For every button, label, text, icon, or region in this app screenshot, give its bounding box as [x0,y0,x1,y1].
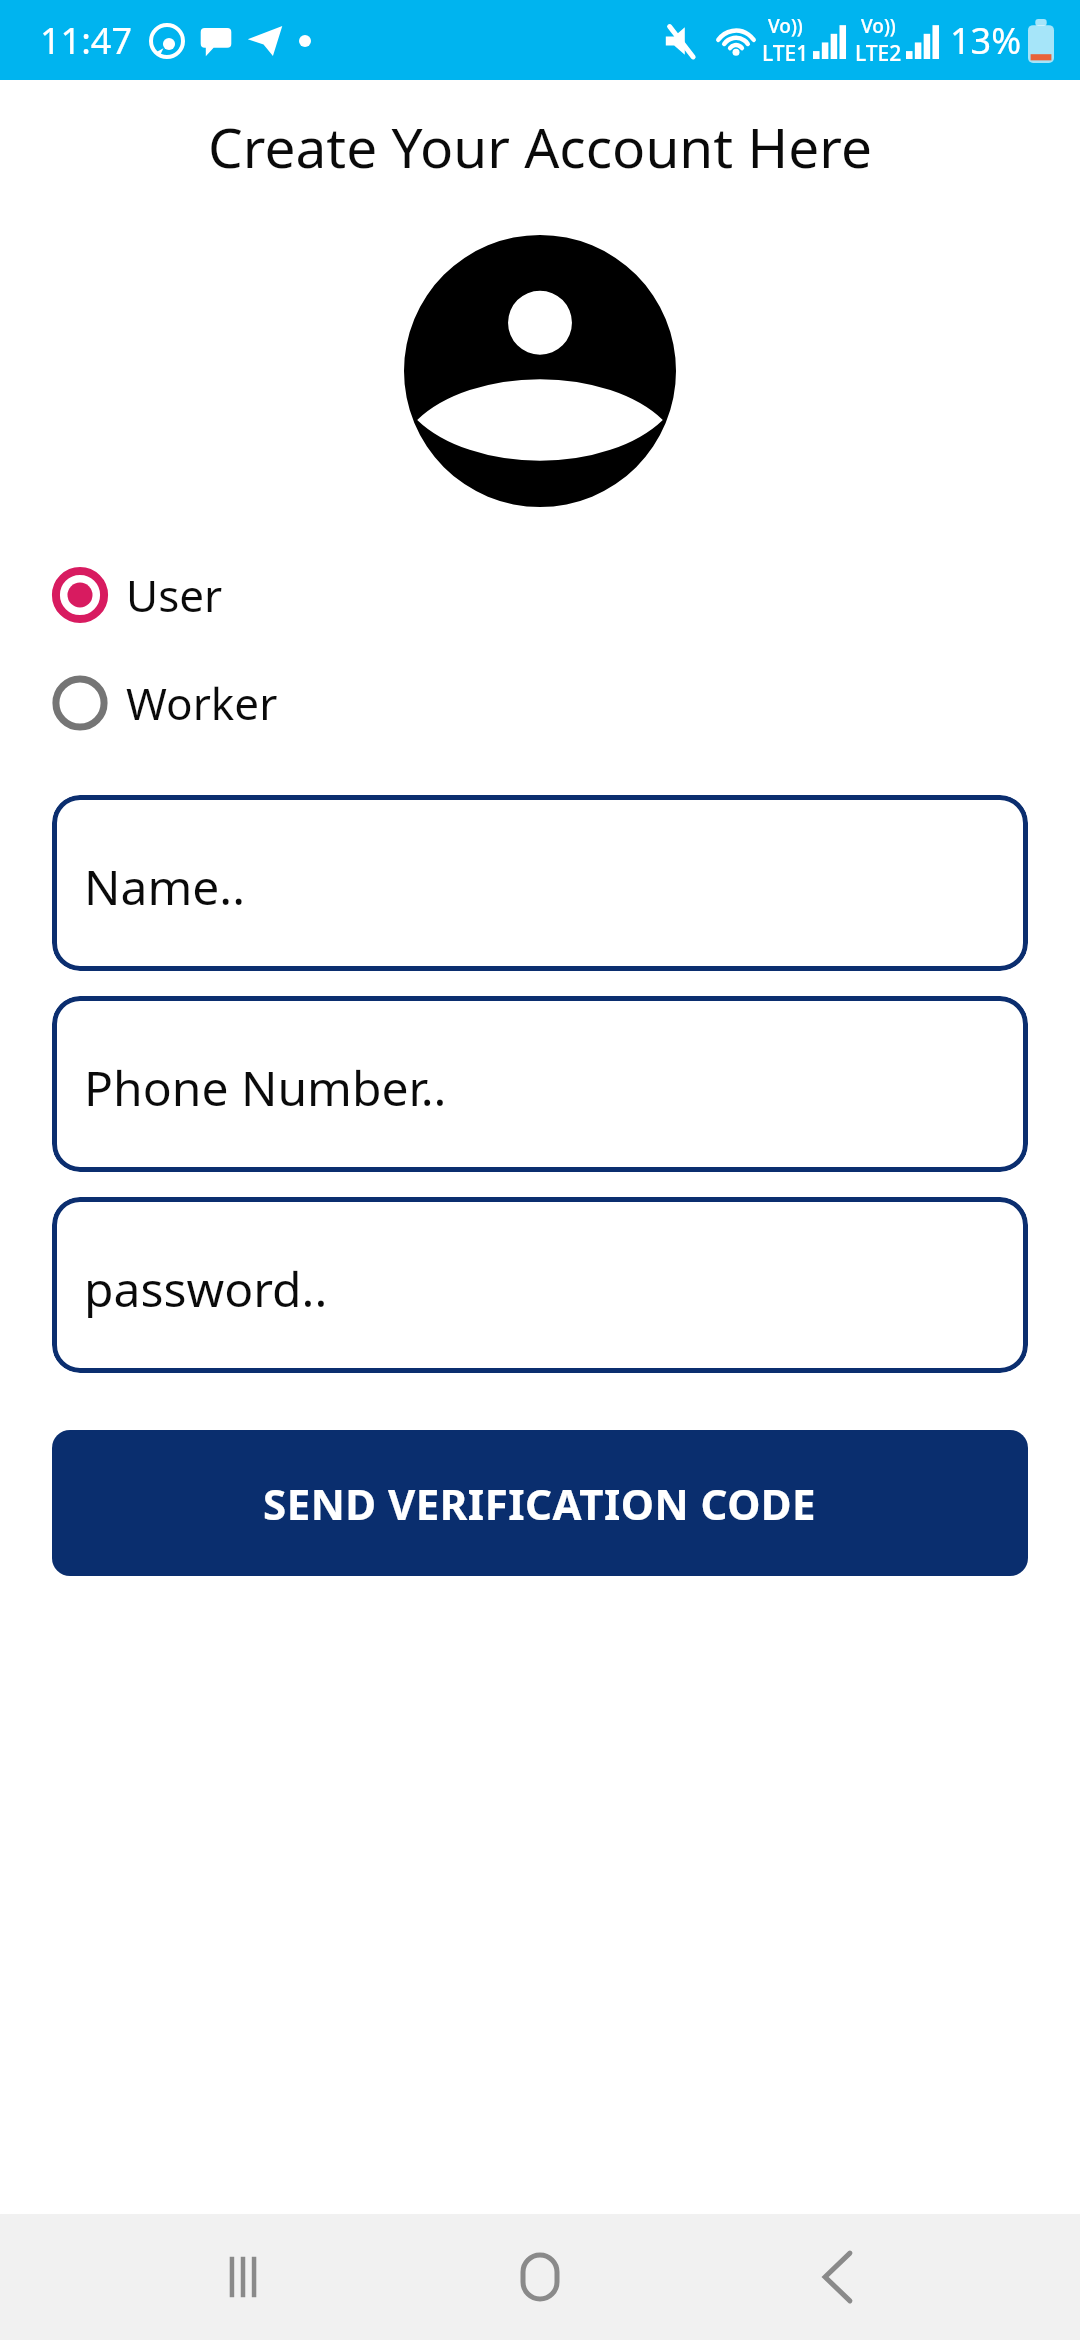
staticText: User [126,565,223,625]
button[interactable]: Recent apps [188,2222,298,2332]
staticText: Vo)) [768,13,803,39]
button[interactable]: SEND VERIFICATION CODE [52,1430,1028,1576]
staticText: Vo)) [861,13,896,39]
staticText: 11:47 [40,16,133,65]
staticText: LTE2 [855,39,902,68]
staticText: password.. [84,1256,328,1321]
staticText: Worker [126,673,278,733]
button[interactable]: Back [783,2222,893,2332]
staticText: 13% [950,16,1022,65]
button[interactable]: Worker [52,667,278,739]
staticText: Create Your Account Here [208,109,872,184]
button[interactable]: Phone Number.. [52,996,1028,1172]
staticText: LTE1 [762,39,809,68]
button[interactable]: Name.. [52,795,1028,971]
button[interactable]: Home [485,2222,595,2332]
staticText: Phone Number.. [84,1055,447,1120]
staticText: SEND VERIFICATION CODE [263,1475,817,1532]
button[interactable]: password.. [52,1197,1028,1373]
button[interactable]: User [52,559,223,631]
staticText: Name.. [84,854,246,919]
